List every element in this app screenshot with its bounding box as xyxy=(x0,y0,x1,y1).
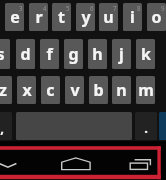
button[interactable]: s xyxy=(0,39,10,69)
staticText: e xyxy=(10,6,20,28)
button[interactable]: c xyxy=(41,76,60,104)
staticText: r xyxy=(35,6,43,28)
button[interactable]: y xyxy=(76,3,95,31)
staticText: d xyxy=(20,43,31,65)
button[interactable]: g xyxy=(64,39,83,69)
staticText: 8 xyxy=(137,4,141,12)
button[interactable]: t xyxy=(52,3,71,31)
button[interactable]: h xyxy=(88,39,107,69)
button[interactable]: f xyxy=(40,39,59,69)
button[interactable]: u xyxy=(99,3,118,31)
button[interactable]: m xyxy=(136,76,155,104)
staticText: h xyxy=(92,43,103,65)
staticText: o xyxy=(151,6,162,28)
staticText: 5 xyxy=(66,4,70,12)
button[interactable]: k xyxy=(136,39,155,69)
button[interactable]: i xyxy=(123,3,142,31)
button[interactable]: . xyxy=(135,112,157,140)
staticText: , xyxy=(0,119,4,137)
staticText: 7 xyxy=(113,4,117,12)
staticText: 4 xyxy=(43,4,47,12)
staticText: f xyxy=(46,43,53,65)
staticText: 9 xyxy=(161,4,165,12)
staticText: u xyxy=(103,6,114,28)
staticText: j xyxy=(119,43,124,65)
staticText: v xyxy=(70,79,80,101)
button[interactable]: z xyxy=(0,76,12,104)
staticText: b xyxy=(93,79,104,101)
button[interactable]: v xyxy=(65,76,84,104)
staticText: k xyxy=(141,43,151,65)
button[interactable]: r xyxy=(29,3,48,31)
staticText: s xyxy=(0,43,5,65)
button[interactable]: Recent apps xyxy=(126,155,156,175)
staticText: x xyxy=(22,79,32,101)
button[interactable]: b xyxy=(89,76,108,104)
staticText: 3 xyxy=(19,4,23,12)
staticText: . xyxy=(144,119,148,137)
button[interactable]: Home xyxy=(58,154,94,174)
staticText: i xyxy=(130,6,135,28)
button[interactable]: , xyxy=(0,112,12,140)
button[interactable]: n xyxy=(112,76,131,104)
button[interactable] xyxy=(159,112,166,140)
staticText: m xyxy=(138,79,154,101)
button[interactable]: Back xyxy=(0,158,22,174)
staticText: t xyxy=(58,6,65,28)
button[interactable]: o xyxy=(147,3,166,31)
button[interactable]: x xyxy=(17,76,36,104)
staticText: z xyxy=(0,79,7,101)
button[interactable]: j xyxy=(112,39,131,69)
staticText: 6 xyxy=(90,4,94,12)
button[interactable]: e xyxy=(5,3,24,31)
staticText: n xyxy=(116,79,127,101)
button[interactable]: d xyxy=(16,39,35,69)
staticText: c xyxy=(46,79,55,101)
staticText: g xyxy=(68,43,79,65)
staticText: y xyxy=(81,6,91,28)
